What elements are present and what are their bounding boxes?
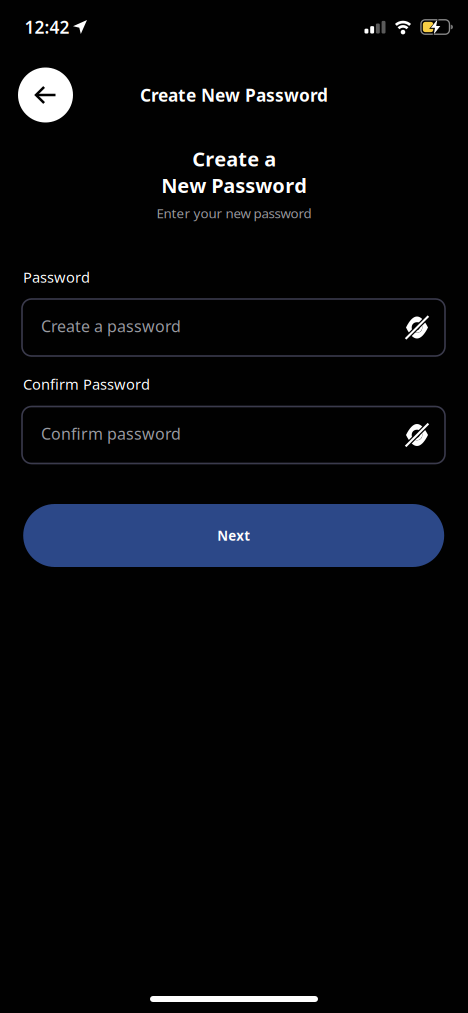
staticText: Create a password — [41, 315, 181, 337]
staticText: 12:42 — [24, 15, 69, 38]
button[interactable]: Show password — [405, 423, 429, 447]
button[interactable]: Show password — [405, 315, 429, 339]
button[interactable]: Back — [18, 67, 73, 122]
staticText: Confirm password — [41, 423, 181, 444]
staticText: Next — [217, 527, 250, 544]
staticText: Create a New Password — [161, 145, 307, 198]
staticText: Enter your new password — [156, 204, 311, 222]
staticText: Password — [23, 267, 90, 287]
button[interactable]: Next — [23, 504, 444, 567]
staticText: Confirm Password — [23, 374, 150, 394]
staticText: Create New Password — [140, 83, 328, 106]
